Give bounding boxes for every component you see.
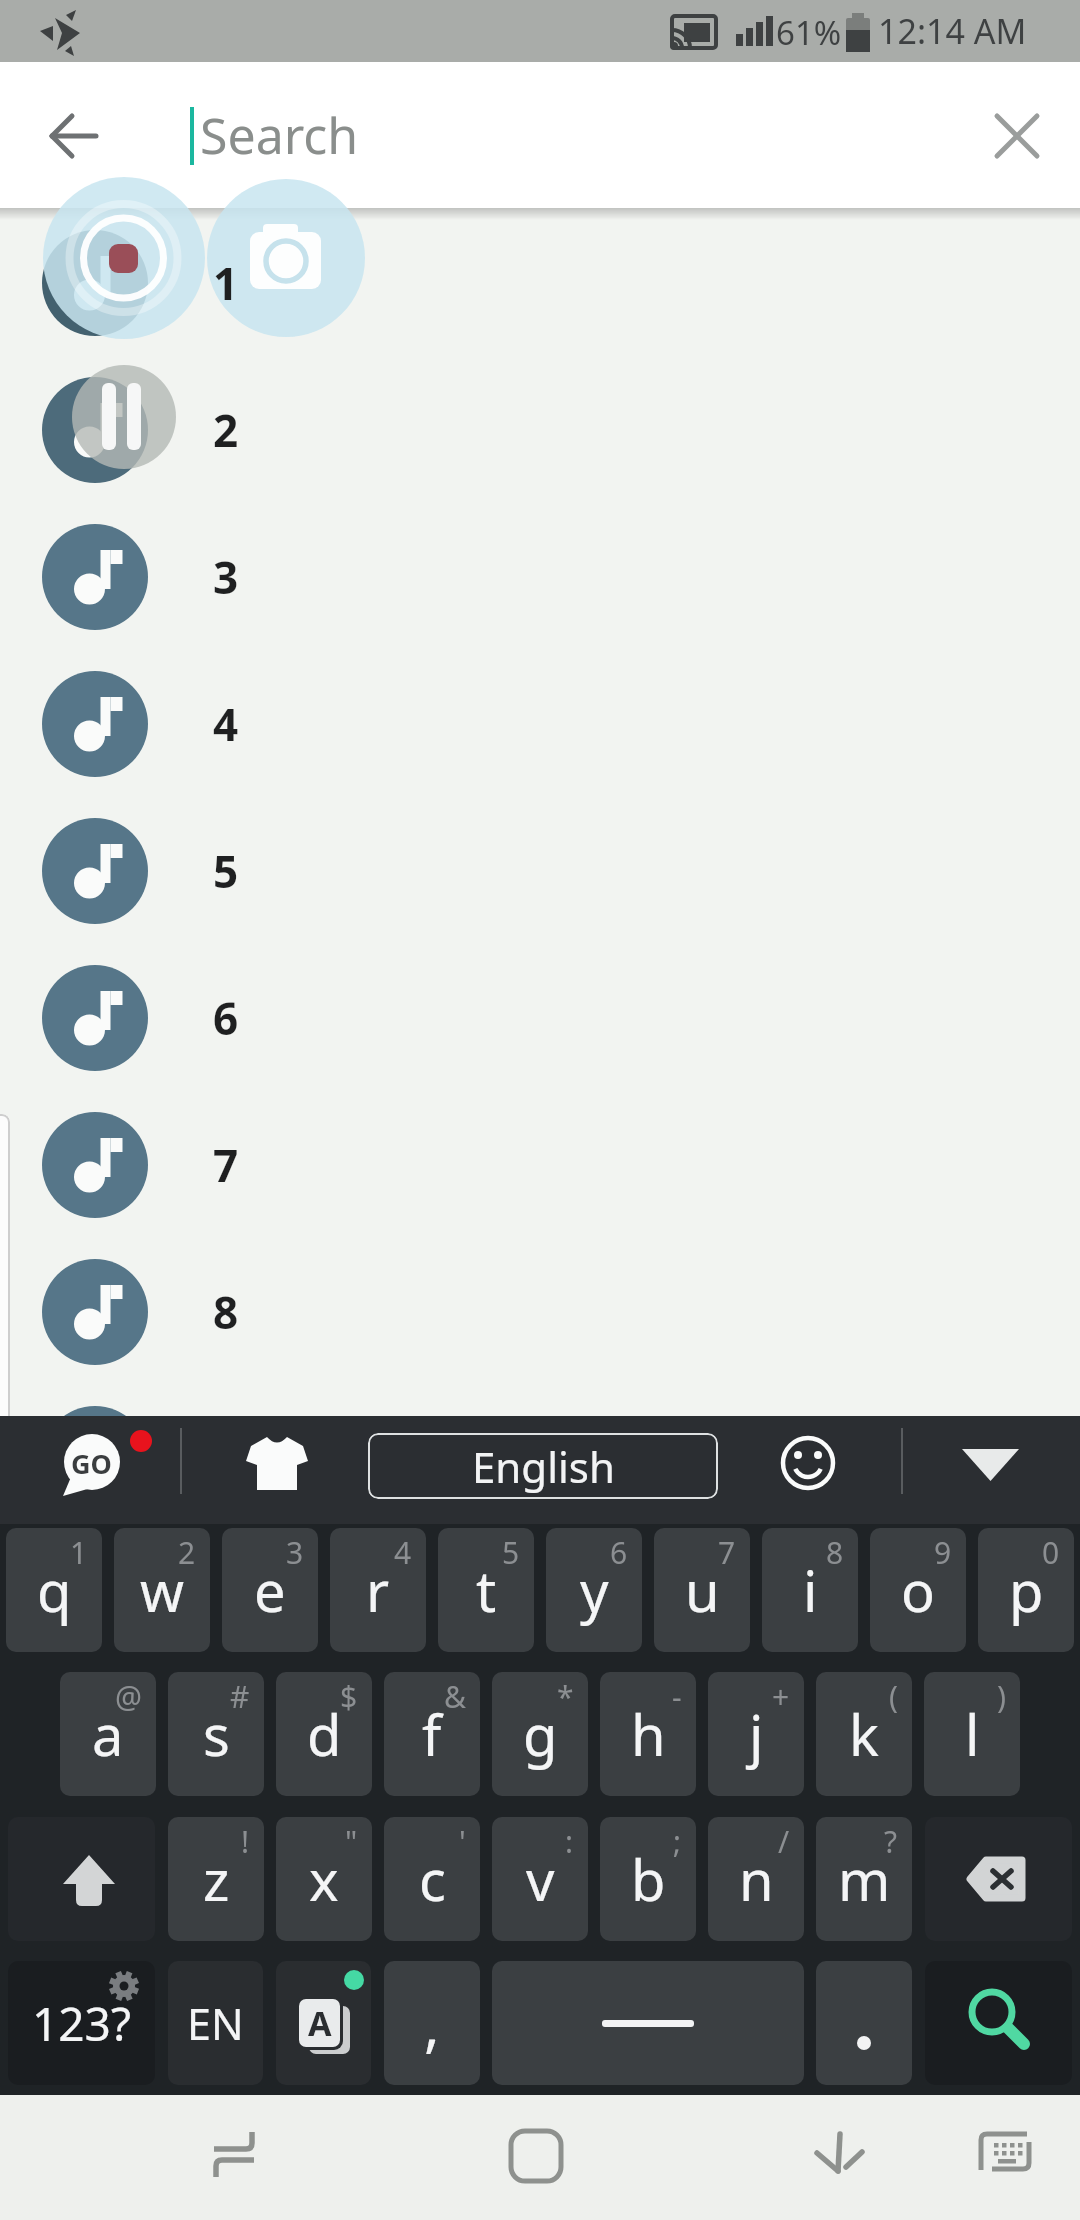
- button[interactable]: 6: [546, 1528, 642, 1652]
- button[interactable]: 8: [762, 1528, 858, 1652]
- button[interactable]: ,: [384, 1961, 480, 2085]
- button[interactable]: 0: [978, 1528, 1074, 1652]
- staticText: 3: [213, 547, 239, 607]
- button[interactable]: #: [168, 1672, 264, 1796]
- button[interactable]: 1: [6, 1528, 102, 1652]
- button[interactable]: [42, 230, 148, 336]
- button[interactable]: [955, 2107, 1055, 2207]
- staticText: w: [140, 1552, 185, 1628]
- button[interactable]: [925, 1817, 1072, 1941]
- button[interactable]: 7: [654, 1528, 750, 1652]
- staticText: y: [580, 1552, 609, 1628]
- staticText: o: [901, 1552, 935, 1628]
- button[interactable]: /: [708, 1817, 804, 1941]
- staticText: !: [241, 1821, 250, 1862]
- staticText: 8: [213, 1282, 239, 1342]
- staticText: (: [889, 1676, 898, 1717]
- button[interactable]: +: [708, 1672, 804, 1796]
- button[interactable]: 2: [114, 1528, 210, 1652]
- staticText: p: [1009, 1552, 1044, 1628]
- staticText: l: [965, 1696, 980, 1772]
- staticText: ,: [424, 1984, 440, 2063]
- button[interactable]: 3: [222, 1528, 318, 1652]
- staticText: ': [459, 1821, 466, 1862]
- button[interactable]: [40, 1424, 155, 1516]
- button[interactable]: [816, 1961, 912, 2085]
- staticText: 2: [213, 400, 239, 460]
- button[interactable]: [492, 1961, 804, 2085]
- button[interactable]: [24, 88, 120, 184]
- staticText: 123?: [32, 1992, 131, 2055]
- button[interactable]: ': [384, 1817, 480, 1941]
- button[interactable]: [42, 965, 148, 1071]
- staticText: English: [472, 1438, 615, 1495]
- button[interactable]: [42, 671, 148, 777]
- staticText: 4: [394, 1532, 412, 1573]
- button[interactable]: [760, 1424, 856, 1516]
- staticText: EN: [187, 1994, 244, 2053]
- staticText: 5: [502, 1532, 520, 1573]
- button[interactable]: 6: [196, 968, 256, 1068]
- button[interactable]: [42, 1406, 148, 1512]
- staticText: ): [997, 1676, 1006, 1717]
- staticText: t: [476, 1552, 497, 1628]
- button[interactable]: !: [168, 1817, 264, 1941]
- staticText: /: [778, 1821, 790, 1862]
- button[interactable]: A: [276, 1961, 371, 2085]
- button[interactable]: 4: [330, 1528, 426, 1652]
- staticText: ;: [673, 1821, 682, 1862]
- staticText: z: [203, 1841, 230, 1917]
- button[interactable]: [0, 1114, 10, 1548]
- button[interactable]: EN: [168, 1961, 263, 2085]
- button[interactable]: [969, 88, 1065, 184]
- staticText: ?: [884, 1821, 898, 1862]
- staticText: *: [557, 1676, 574, 1717]
- staticText: 7: [213, 1135, 239, 1195]
- staticText: 6: [610, 1532, 628, 1573]
- button[interactable]: [42, 377, 148, 483]
- staticText: j: [749, 1696, 764, 1772]
- staticText: 12:14 AM: [878, 8, 1027, 54]
- staticText: e: [254, 1552, 286, 1628]
- button[interactable]: *: [492, 1672, 588, 1796]
- staticText: +: [772, 1676, 790, 1717]
- button[interactable]: [42, 524, 148, 630]
- button[interactable]: 1: [196, 233, 256, 333]
- button[interactable]: ": [276, 1817, 372, 1941]
- button[interactable]: :: [492, 1817, 588, 1941]
- button[interactable]: 2: [196, 380, 256, 480]
- button[interactable]: 3: [196, 527, 256, 627]
- button[interactable]: 5: [438, 1528, 534, 1652]
- staticText: r: [366, 1552, 390, 1628]
- button[interactable]: [487, 2107, 587, 2207]
- button[interactable]: [184, 2107, 284, 2207]
- button[interactable]: 4: [196, 674, 256, 774]
- button[interactable]: @: [60, 1672, 156, 1796]
- staticText: :: [565, 1821, 574, 1862]
- button[interactable]: [42, 1259, 148, 1365]
- button[interactable]: [8, 1817, 155, 1941]
- button[interactable]: [925, 1961, 1072, 2085]
- button[interactable]: ): [924, 1672, 1020, 1796]
- button[interactable]: ?: [816, 1817, 912, 1941]
- button[interactable]: [790, 2107, 890, 2207]
- staticText: i: [803, 1552, 818, 1628]
- button[interactable]: [940, 1424, 1042, 1516]
- button[interactable]: 123?: [8, 1961, 155, 2085]
- staticText: u: [685, 1552, 720, 1628]
- button[interactable]: English: [368, 1433, 718, 1499]
- button[interactable]: 8: [196, 1262, 256, 1362]
- button[interactable]: [42, 818, 148, 924]
- staticText: c: [419, 1841, 446, 1917]
- button[interactable]: 9: [870, 1528, 966, 1652]
- button[interactable]: (: [816, 1672, 912, 1796]
- staticText: #: [230, 1676, 250, 1717]
- button[interactable]: &: [384, 1672, 480, 1796]
- button[interactable]: $: [276, 1672, 372, 1796]
- button[interactable]: -: [600, 1672, 696, 1796]
- button[interactable]: [42, 1112, 148, 1218]
- button[interactable]: 7: [196, 1115, 256, 1215]
- button[interactable]: [225, 1424, 330, 1516]
- button[interactable]: ;: [600, 1817, 696, 1941]
- button[interactable]: 5: [196, 821, 256, 921]
